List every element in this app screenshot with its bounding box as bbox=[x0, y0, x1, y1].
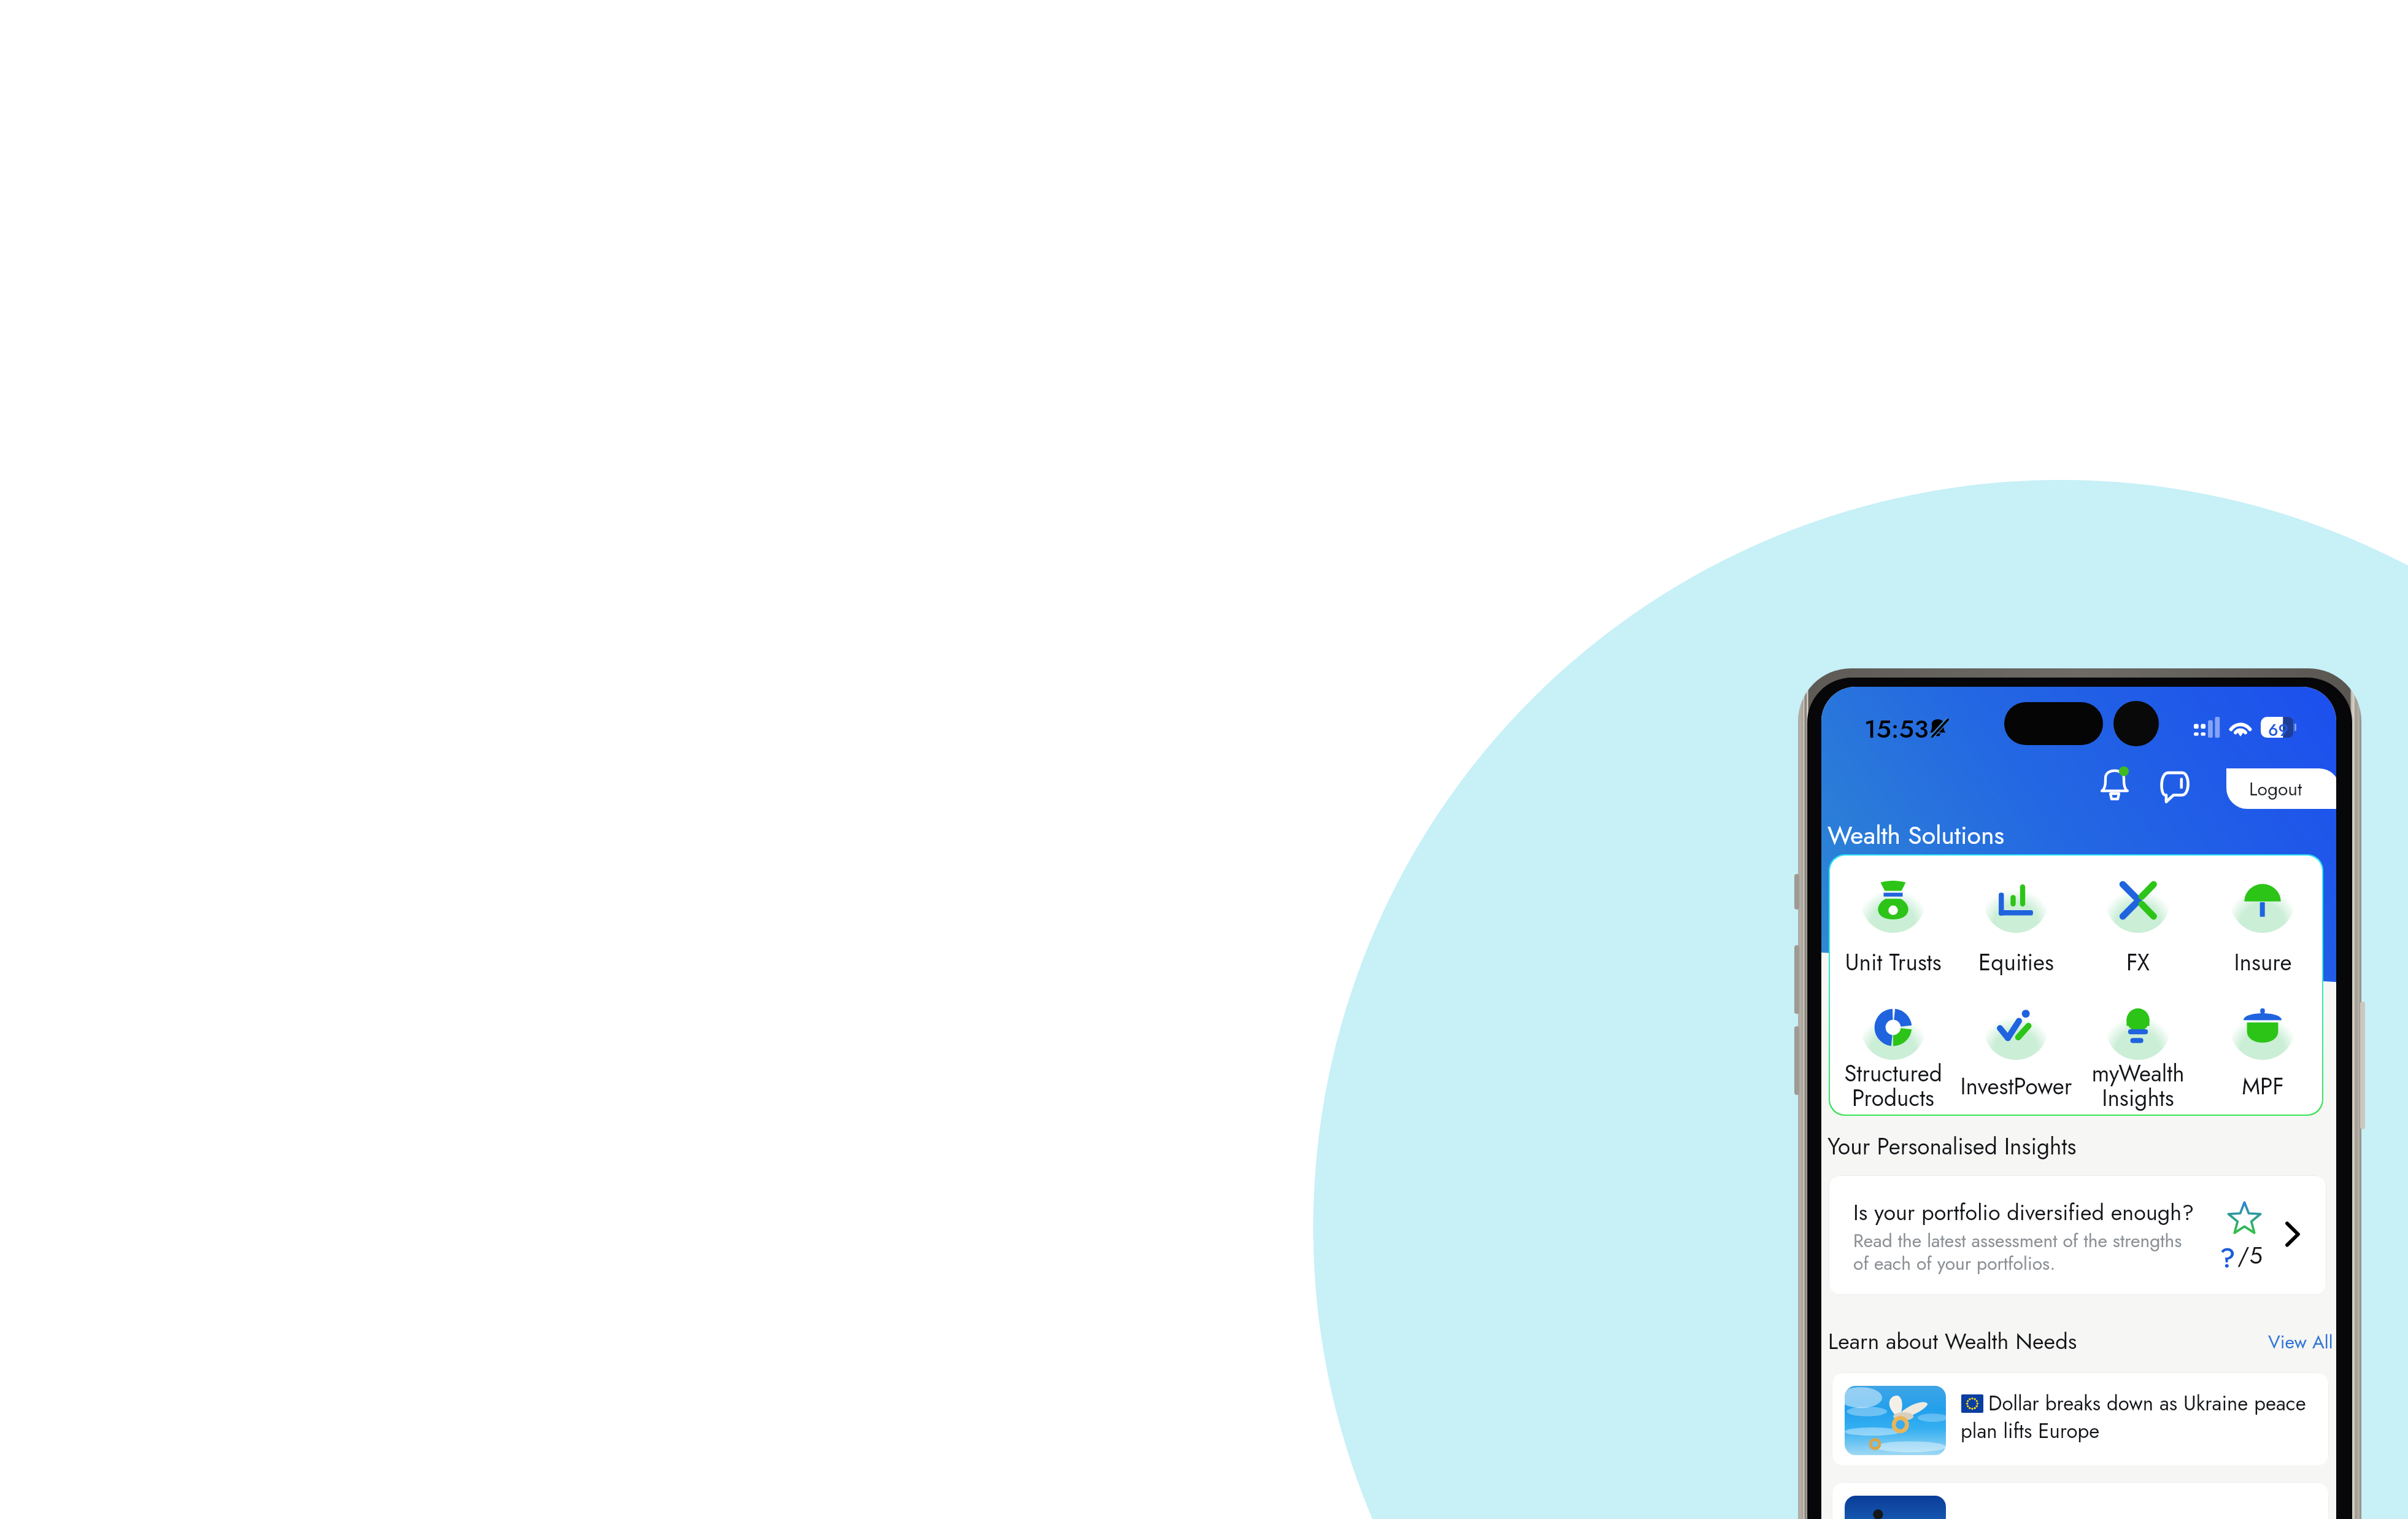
button[interactable] bbox=[1832, 991, 1955, 1089]
button[interactable] bbox=[1955, 991, 2077, 1089]
staticText: plan lifts Europe bbox=[1961, 1417, 2100, 1446]
staticText: MPF bbox=[2242, 1070, 2284, 1102]
button[interactable] bbox=[2077, 991, 2199, 1089]
staticText: Insure bbox=[2234, 946, 2292, 978]
button[interactable] bbox=[1832, 1482, 2329, 1519]
button[interactable] bbox=[1955, 864, 2077, 962]
staticText: Read the latest assessment of the streng… bbox=[1853, 1227, 2182, 1277]
staticText: Equities bbox=[1978, 946, 2054, 978]
button[interactable] bbox=[1832, 864, 1955, 962]
staticText: /5 bbox=[2237, 1239, 2263, 1272]
button[interactable]: Notifications bbox=[2091, 760, 2138, 807]
staticText: Learn about Wealth Needs bbox=[1828, 1325, 2077, 1357]
button[interactable]: View All bbox=[2268, 1329, 2333, 1355]
staticText: 69 bbox=[2268, 718, 2289, 739]
staticText: FX bbox=[2126, 946, 2150, 978]
button[interactable]: Is your portfolio diversified enough? bbox=[1829, 1175, 2326, 1295]
button[interactable] bbox=[2201, 864, 2322, 962]
staticText: InvestPower bbox=[1960, 1070, 2072, 1102]
staticText: Dollar breaks down as Ukraine peace bbox=[1988, 1389, 2306, 1418]
button[interactable] bbox=[2201, 991, 2322, 1089]
button[interactable]: Chat bbox=[2151, 763, 2198, 810]
staticText: 15:53 bbox=[1864, 711, 1929, 747]
button[interactable]: Logout bbox=[2226, 768, 2336, 809]
staticText: Is your portfolio diversified enough? bbox=[1853, 1196, 2194, 1228]
staticText: Logout bbox=[2249, 776, 2302, 802]
staticText: Your Personalised Insights bbox=[1827, 1130, 2077, 1162]
staticText: Structured Products bbox=[1844, 1057, 1942, 1115]
staticText: myWealth Insights bbox=[2091, 1057, 2185, 1115]
staticText: View All bbox=[2268, 1329, 2333, 1355]
button[interactable]: Dollar breaks down as Ukraine peace bbox=[1832, 1372, 2329, 1466]
staticText: Unit Trusts bbox=[1845, 946, 1942, 978]
staticText: ? bbox=[2220, 1239, 2236, 1278]
staticText: Wealth Solutions bbox=[1827, 817, 2004, 853]
button[interactable] bbox=[2077, 864, 2199, 962]
